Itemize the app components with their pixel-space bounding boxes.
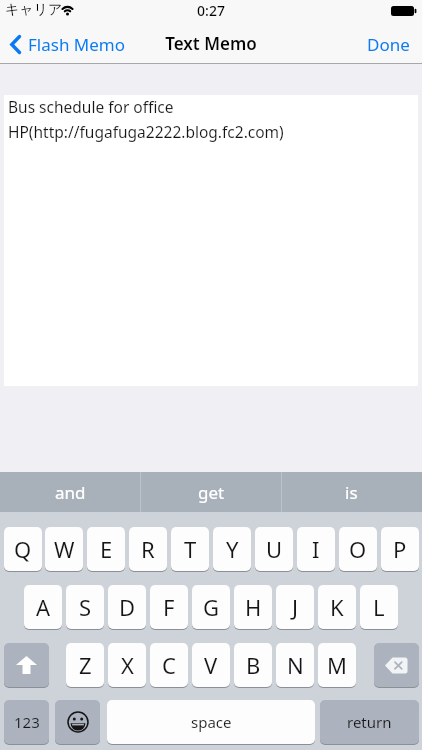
button[interactable]: A [24, 585, 62, 629]
button[interactable]: W [45, 527, 83, 571]
staticText: Flash Memo [28, 33, 126, 56]
button[interactable]: M [318, 643, 356, 687]
staticText: Z [79, 650, 92, 680]
staticText: Y [226, 534, 239, 564]
staticText: is [345, 481, 358, 504]
staticText: キャリア [5, 1, 63, 19]
staticText: and [55, 481, 86, 504]
button[interactable]: H [234, 585, 272, 629]
staticText: R [141, 534, 155, 564]
button[interactable]: P [381, 527, 419, 571]
staticText: J [292, 592, 299, 622]
staticText: N [287, 650, 304, 680]
staticText: A [36, 592, 51, 622]
staticText: L [373, 592, 385, 622]
button[interactable]: Flash Memo [0, 27, 140, 61]
button[interactable]: get [141, 472, 282, 512]
button[interactable]: is [281, 472, 422, 512]
button[interactable]: Y [213, 527, 251, 571]
staticText: M [327, 650, 347, 680]
button[interactable]: X [108, 643, 146, 687]
button[interactable]: G [192, 585, 230, 629]
staticText: D [119, 592, 136, 622]
button[interactable] [55, 700, 100, 744]
staticText: T [184, 534, 197, 564]
button[interactable]: D [108, 585, 146, 629]
staticText: 0:27 [0, 1, 422, 20]
staticText: space [191, 712, 232, 732]
button[interactable]: return [320, 700, 419, 744]
button[interactable]: S [66, 585, 104, 629]
button[interactable]: J [276, 585, 314, 629]
button[interactable]: Z [66, 643, 104, 687]
staticText: B [246, 650, 261, 680]
staticText: X [121, 650, 134, 680]
staticText: H [245, 592, 262, 622]
button[interactable]: U [255, 527, 293, 571]
staticText: I [312, 534, 320, 564]
staticText: return [347, 712, 392, 732]
button[interactable]: N [276, 643, 314, 687]
staticText: Done [367, 33, 410, 56]
staticText: P [393, 534, 407, 564]
staticText: U [266, 534, 283, 564]
button[interactable]: R [129, 527, 167, 571]
staticText: C [162, 650, 176, 680]
button[interactable]: E [87, 527, 125, 571]
staticText: S [79, 592, 92, 622]
staticText: K [330, 592, 344, 622]
button[interactable] [4, 643, 49, 687]
button[interactable]: C [150, 643, 188, 687]
button[interactable] [374, 643, 419, 687]
staticText: G [203, 592, 220, 622]
button[interactable]: B [234, 643, 272, 687]
staticText: F [163, 592, 175, 622]
button[interactable]: Done [350, 27, 422, 61]
button[interactable]: O [339, 527, 377, 571]
button[interactable]: K [318, 585, 356, 629]
button[interactable]: F [150, 585, 188, 629]
button[interactable]: space [107, 700, 315, 744]
staticText: V [204, 650, 218, 680]
staticText: E [100, 534, 113, 564]
staticText: O [349, 534, 367, 564]
button[interactable]: T [171, 527, 209, 571]
staticText: Bus schedule for office [8, 96, 174, 117]
staticText: 123 [14, 712, 40, 732]
button[interactable]: Bus schedule for office [4, 95, 418, 386]
button[interactable]: 123 [4, 700, 49, 744]
button[interactable]: V [192, 643, 230, 687]
staticText: Text Memo [0, 32, 422, 55]
button[interactable]: and [0, 472, 141, 512]
button[interactable]: I [297, 527, 335, 571]
button[interactable]: Q [4, 527, 42, 571]
staticText: get [198, 481, 225, 504]
staticText: W [54, 534, 75, 564]
staticText: HP(http://fugafuga2222.blog.fc2.com) [8, 121, 284, 142]
button[interactable]: L [360, 585, 398, 629]
staticText: Q [14, 534, 32, 564]
